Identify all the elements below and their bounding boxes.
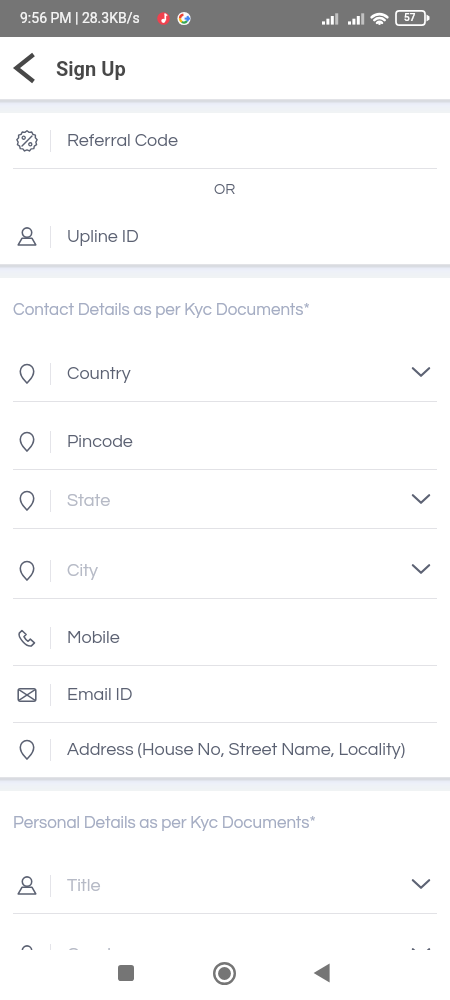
staticText: Sign Up: [56, 57, 126, 80]
staticText: Mobile: [67, 628, 120, 647]
button[interactable]: Address (House No, Street Name, Locality…: [0, 723, 450, 777]
button[interactable]: Home: [200, 949, 248, 997]
staticText: Gender: [67, 945, 128, 964]
button[interactable]: Country: [0, 342, 450, 401]
button[interactable]: Back: [0, 37, 50, 99]
button[interactable]: State: [0, 470, 450, 528]
button[interactable]: Email ID: [0, 666, 450, 722]
staticText: Contact Details as per Kyc Documents*: [13, 301, 310, 319]
staticText: Pincode: [67, 432, 133, 451]
staticText: Email ID: [67, 685, 133, 704]
staticText: Country: [67, 364, 131, 383]
staticText: Upline ID: [67, 227, 139, 246]
staticText: 9:56 PM | 28.3KB/s: [20, 10, 140, 26]
staticText: OR: [214, 182, 236, 197]
button[interactable]: Back: [298, 949, 346, 997]
staticText: Referral Code: [67, 131, 178, 150]
button[interactable]: City: [0, 529, 450, 598]
button[interactable]: Mobile: [0, 599, 450, 665]
button[interactable]: Recents: [102, 949, 150, 997]
button[interactable]: Title: [0, 855, 450, 913]
staticText: Personal Details as per Kyc Documents*: [13, 814, 316, 832]
button[interactable]: Gender: [0, 914, 450, 982]
button[interactable]: Pincode: [0, 402, 450, 469]
staticText: Title: [67, 876, 101, 895]
button[interactable]: Upline ID: [0, 211, 450, 264]
staticText: State: [67, 491, 111, 510]
staticText: 57: [404, 12, 416, 24]
button[interactable]: Referral Code: [0, 113, 450, 168]
staticText: City: [67, 561, 98, 580]
staticText: Address (House No, Street Name, Locality…: [67, 740, 406, 759]
